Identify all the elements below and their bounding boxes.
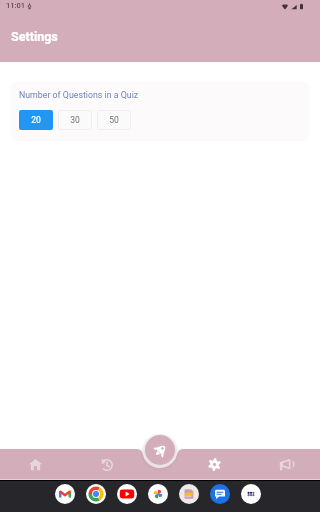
staticText: Number of Questions in a Quiz: [19, 90, 139, 100]
button[interactable]: App: [117, 484, 137, 504]
button[interactable]: App: [55, 484, 75, 504]
button[interactable]: Home: [19, 449, 51, 480]
button[interactable]: 20: [19, 110, 53, 130]
staticText: 50: [109, 115, 119, 125]
button[interactable]: App: [210, 484, 230, 504]
staticText: 11:01: [6, 1, 26, 10]
staticText: 30: [70, 115, 80, 125]
button[interactable]: App: [148, 484, 168, 504]
button[interactable]: App: [241, 484, 261, 504]
button[interactable]: App: [86, 484, 106, 504]
button[interactable]: Settings: [198, 449, 230, 480]
button[interactable]: Announcements: [269, 449, 301, 480]
button[interactable]: 30: [58, 110, 92, 130]
button[interactable]: 50: [97, 110, 131, 130]
button[interactable]: App: [179, 484, 199, 504]
staticText: Settings: [11, 29, 58, 44]
button[interactable]: Start quiz: [140, 430, 180, 470]
staticText: 20: [31, 115, 41, 125]
button[interactable]: History: [90, 449, 122, 480]
